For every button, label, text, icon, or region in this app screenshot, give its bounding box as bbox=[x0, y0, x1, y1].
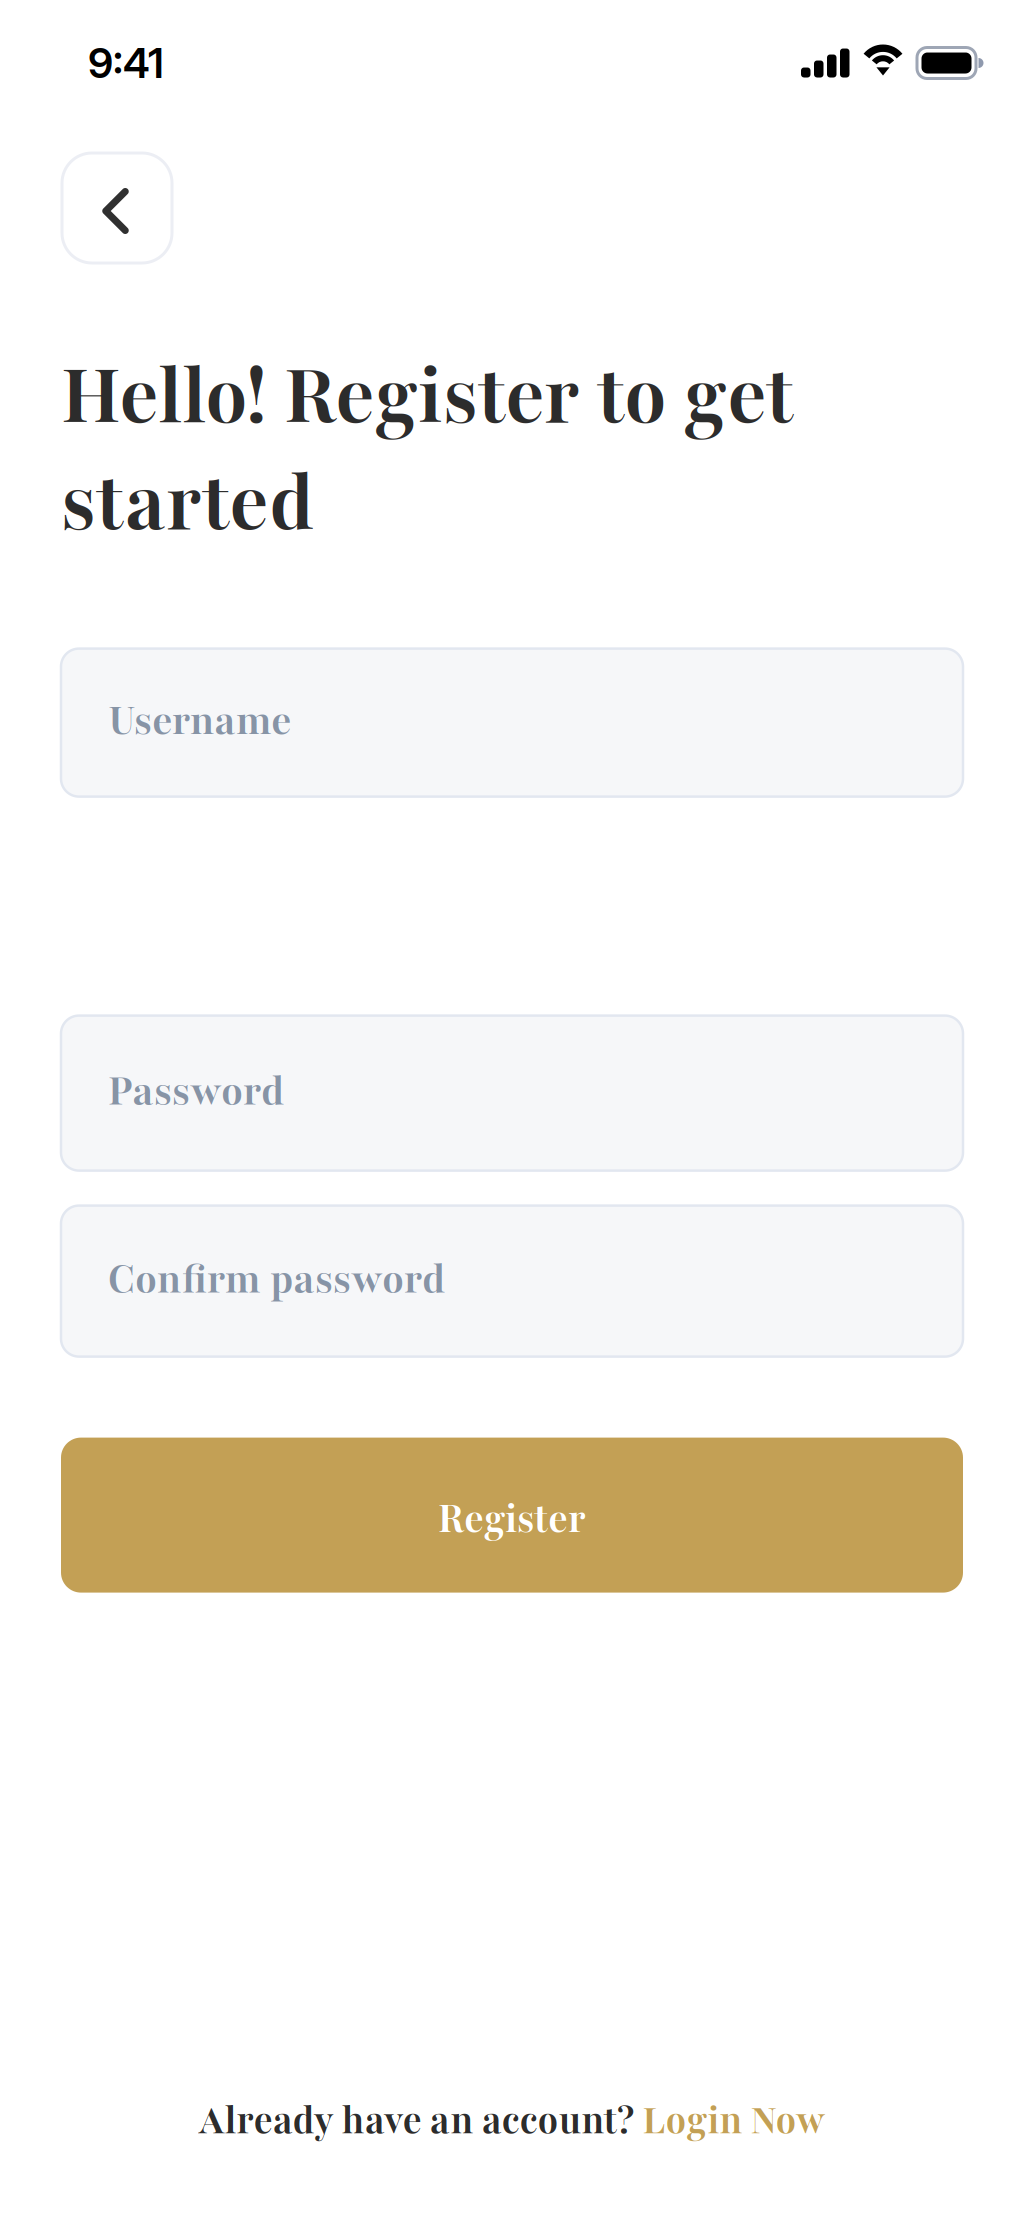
button[interactable]: Confirm password bbox=[61, 1206, 963, 1357]
button[interactable]: Back bbox=[62, 153, 172, 263]
button[interactable]: Register bbox=[61, 1438, 963, 1593]
staticText: 9:41 bbox=[88, 38, 164, 88]
staticText: Password bbox=[108, 1063, 284, 1119]
staticText: Confirm password bbox=[108, 1251, 445, 1307]
staticText: Hello! Register to get started bbox=[61, 342, 794, 558]
staticText: Username bbox=[108, 693, 291, 749]
button[interactable]: Already have an account? bbox=[198, 2094, 825, 2147]
button[interactable]: Password bbox=[61, 1016, 963, 1171]
staticText: Register bbox=[438, 1492, 586, 1546]
staticText: Already have an account? bbox=[198, 2094, 642, 2147]
staticText: Login Now bbox=[642, 2094, 825, 2147]
button[interactable]: Username bbox=[61, 649, 963, 797]
